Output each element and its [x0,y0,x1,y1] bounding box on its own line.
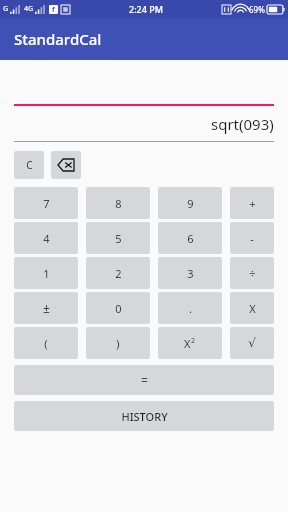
button[interactable]: ( [14,327,78,359]
staticText: 9 [187,196,194,211]
button[interactable]: 5 [86,222,150,254]
staticText: 2 [191,336,196,346]
staticText: 3 [187,266,194,281]
staticText: f [52,5,55,14]
staticText: 0 [115,301,122,316]
staticText: 7 [43,196,50,211]
button[interactable]: 3 [158,257,222,289]
button[interactable]: - [230,222,274,254]
staticText: . [189,301,192,316]
staticText: C [26,158,33,172]
staticText: ( [44,336,48,351]
staticText: 4 [43,231,50,246]
button[interactable]: . [158,292,222,324]
staticText: ) [116,336,120,351]
staticText: ± [43,300,50,316]
button[interactable]: 0 [86,292,150,324]
staticText: sqrt(093) [211,114,274,134]
button[interactable]: 1 [14,257,78,289]
staticText: = [141,372,148,388]
staticText: + [249,196,256,211]
button[interactable]: 2 [86,257,150,289]
staticText: 8 [115,196,122,211]
button[interactable]: Backspace [51,151,81,179]
button[interactable]: √ [230,327,274,359]
staticText: 1 [43,266,50,281]
staticText: X [184,336,191,351]
staticText: X [249,301,256,316]
button[interactable]: = [14,365,274,395]
staticText: 6 [187,231,194,246]
button[interactable]: X [158,327,222,359]
button[interactable]: 4 [14,222,78,254]
staticText: ÷ [249,266,256,281]
button[interactable]: 6 [158,222,222,254]
button[interactable]: 7 [14,187,78,219]
staticText: G [3,4,9,14]
staticText: StandardCal [14,29,102,49]
button[interactable]: ÷ [230,257,274,289]
staticText: 2:24 PM [129,3,163,15]
button[interactable]: ± [14,292,78,324]
button[interactable]: 8 [86,187,150,219]
staticText: √ [248,336,256,350]
staticText: - [250,231,254,246]
staticText: 4G [24,4,34,14]
button[interactable]: HISTORY [14,401,274,431]
staticText: 69% [249,4,265,15]
button[interactable]: + [230,187,274,219]
button[interactable]: X [230,292,274,324]
staticText: 2 [115,266,122,281]
staticText: 5 [115,231,122,246]
button[interactable]: C [14,151,44,179]
staticText: HISTORY [121,409,168,424]
button[interactable]: 9 [158,187,222,219]
button[interactable]: ) [86,327,150,359]
